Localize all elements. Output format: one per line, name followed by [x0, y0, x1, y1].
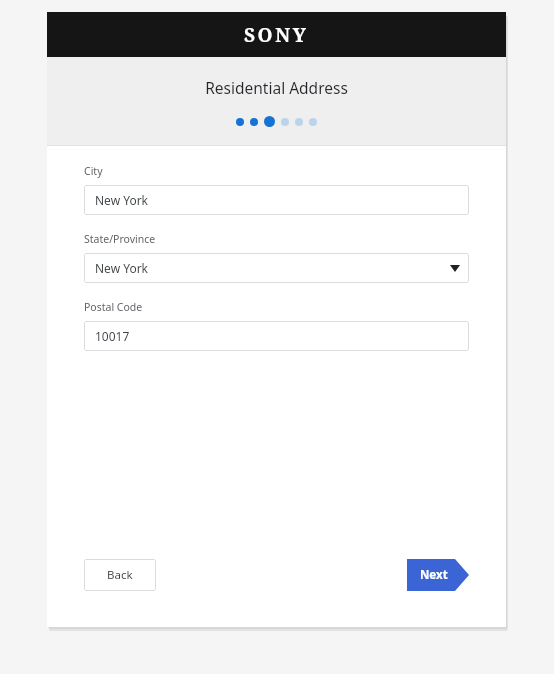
- button[interactable]: New York: [84, 253, 469, 283]
- staticText: City: [84, 164, 103, 178]
- button[interactable]: New York: [84, 185, 469, 215]
- staticText: SONY: [244, 22, 309, 48]
- button[interactable]: 10017: [84, 321, 469, 351]
- button[interactable]: Next: [407, 559, 469, 591]
- staticText: New York: [95, 192, 149, 208]
- staticText: Back: [107, 567, 133, 583]
- staticText: New York: [95, 260, 149, 276]
- staticText: State/Province: [84, 232, 156, 246]
- button[interactable]: Back: [84, 559, 156, 591]
- staticText: Next: [420, 567, 448, 583]
- staticText: 10017: [95, 328, 130, 344]
- staticText: Residential Address: [205, 77, 348, 98]
- staticText: Postal Code: [84, 300, 143, 314]
